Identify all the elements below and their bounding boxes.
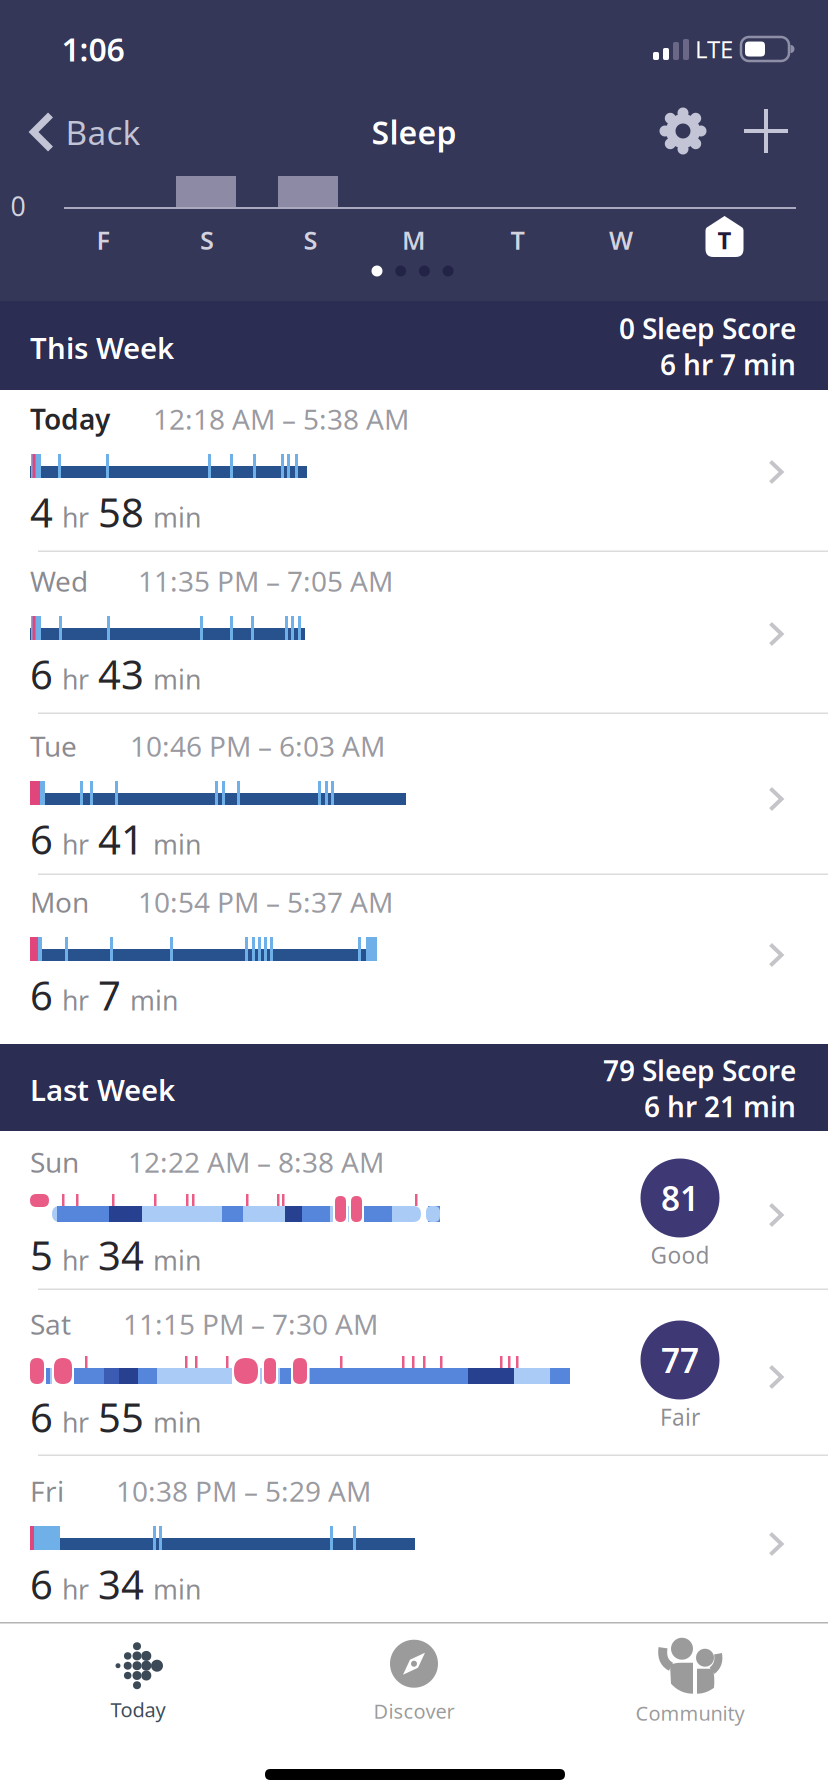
staticText: F (96, 223, 110, 257)
staticText: 43 (98, 647, 144, 700)
staticText: hr (62, 982, 89, 1018)
staticText: Wed (30, 562, 88, 600)
staticText: hr (62, 1404, 89, 1440)
staticText: Fri (30, 1472, 64, 1510)
staticText: LTE (695, 33, 733, 65)
button[interactable]: Today (0, 390, 828, 552)
button[interactable]: Sun (0, 1131, 828, 1290)
staticText: 10:54 PM – 5:37 AM (138, 883, 393, 921)
staticText: 6 (30, 1390, 53, 1443)
staticText: min (130, 982, 178, 1018)
staticText: min (153, 826, 201, 862)
staticText: Today (30, 400, 110, 438)
staticText: Community (635, 1700, 744, 1726)
staticText: min (153, 1404, 201, 1440)
staticText: 11:35 PM – 7:05 AM (138, 562, 393, 600)
staticText: 12:22 AM – 8:38 AM (128, 1143, 384, 1181)
staticText: hr (62, 826, 89, 862)
staticText: Discover (373, 1698, 454, 1724)
staticText: Sleep (371, 111, 456, 153)
button[interactable]: Settings (659, 107, 707, 155)
staticText: W (609, 223, 633, 257)
button[interactable]: Add (744, 109, 788, 153)
button[interactable]: Today (48, 1629, 228, 1735)
staticText: 6 (30, 1557, 53, 1610)
button[interactable]: Wed (0, 552, 828, 714)
staticText: Mon (30, 883, 89, 921)
staticText: Sun (30, 1143, 79, 1181)
staticText: 6 (30, 968, 53, 1021)
staticText: hr (62, 499, 89, 535)
staticText: 0 Sleep Score (619, 310, 796, 347)
staticText: 79 Sleep Score (603, 1052, 796, 1089)
staticText: 81 (661, 1176, 699, 1220)
staticText: 34 (98, 1228, 144, 1281)
staticText: Last Week (30, 1070, 175, 1109)
staticText: 10:46 PM – 6:03 AM (130, 727, 385, 765)
staticText: Sat (30, 1305, 71, 1343)
button[interactable]: Mon (0, 875, 828, 1044)
button[interactable]: Fri (0, 1456, 828, 1622)
button[interactable]: Tue (0, 714, 828, 875)
staticText: Fair (660, 1402, 700, 1432)
button[interactable]: Community (590, 1629, 790, 1735)
staticText: 6 (30, 647, 53, 700)
staticText: min (153, 1242, 201, 1278)
staticText: min (153, 661, 201, 697)
staticText: hr (62, 661, 89, 697)
button[interactable]: Sat (0, 1290, 828, 1456)
staticText: min (153, 499, 201, 535)
staticText: 55 (98, 1390, 144, 1443)
staticText: S (200, 223, 214, 257)
staticText: 77 (661, 1338, 699, 1382)
staticText: 7 (98, 968, 121, 1021)
staticText: 10:38 PM – 5:29 AM (116, 1472, 371, 1510)
staticText: Tue (30, 727, 77, 765)
staticText: hr (62, 1571, 89, 1607)
staticText: S (303, 223, 317, 257)
staticText: 34 (98, 1557, 144, 1610)
staticText: T (717, 224, 731, 256)
staticText: hr (62, 1242, 89, 1278)
staticText: 6 (30, 812, 53, 865)
staticText: 5 (30, 1228, 53, 1281)
staticText: T (510, 223, 524, 257)
button[interactable]: Back (27, 102, 140, 162)
staticText: 0 (10, 188, 25, 224)
staticText: 41 (98, 812, 144, 865)
staticText: Today (110, 1696, 165, 1723)
button[interactable]: Discover (324, 1629, 504, 1735)
staticText: 58 (98, 485, 144, 538)
staticText: min (153, 1571, 201, 1607)
staticText: Good (650, 1240, 709, 1270)
staticText: 12:18 AM – 5:38 AM (153, 400, 409, 438)
staticText: 1:06 (61, 28, 124, 70)
staticText: 4 (30, 485, 53, 538)
staticText: 6 hr 21 min (644, 1088, 796, 1125)
staticText: 11:15 PM – 7:30 AM (123, 1305, 378, 1343)
staticText: 6 hr 7 min (660, 346, 796, 383)
staticText: Back (65, 110, 140, 154)
staticText: M (402, 223, 426, 257)
staticText: This Week (30, 328, 174, 367)
